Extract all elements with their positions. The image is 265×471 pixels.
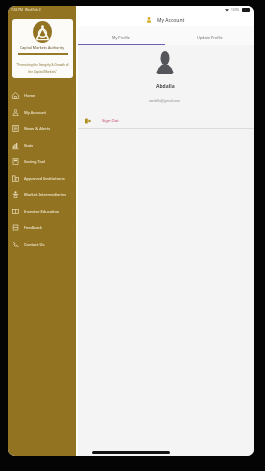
- staticText: Capital Markets Authority: [20, 45, 65, 50]
- button[interactable]: My Profile: [76, 35, 165, 45]
- button[interactable]: Investor Education: [8, 203, 76, 220]
- staticText: Wed Feb 2: [25, 8, 41, 12]
- button[interactable]: Market Intermediaries: [8, 186, 76, 203]
- staticText: Market Intermediaries: [24, 192, 67, 197]
- button[interactable]: Approved Institutions: [8, 170, 76, 187]
- button[interactable]: My Account: [8, 104, 76, 121]
- staticText: Feedback: [24, 225, 42, 230]
- button[interactable]: Contact Us: [8, 236, 76, 253]
- staticText: News & Alerts: [24, 126, 51, 131]
- button[interactable]: Update Profile: [165, 35, 254, 45]
- button[interactable]: Saving Tool: [8, 153, 76, 170]
- button[interactable]: News & Alerts: [8, 120, 76, 137]
- staticText: My Account: [157, 17, 185, 24]
- staticText: Sign Out: [102, 118, 119, 124]
- staticText: Saving Tool: [24, 159, 46, 164]
- button[interactable]: Stats: [8, 137, 76, 154]
- staticText: awdalla@gmail.com: [149, 98, 181, 102]
- button[interactable]: Home: [8, 87, 76, 104]
- staticText: Approved Institutions: [24, 176, 65, 181]
- staticText: Home: [24, 93, 36, 98]
- staticText: Update Profile: [197, 35, 223, 40]
- staticText: 7:52 PM: [11, 8, 23, 12]
- staticText: Stats: [24, 143, 34, 148]
- staticText: Abdalla: [156, 83, 175, 90]
- button[interactable]: Feedback: [8, 219, 76, 236]
- staticText: My Profile: [112, 35, 130, 40]
- staticText: 100%: [231, 8, 240, 12]
- button[interactable]: Sign Out: [76, 113, 254, 128]
- staticText: Contact Us: [24, 242, 45, 247]
- staticText: My Account: [24, 110, 46, 115]
- staticText: “Promoting the Integrity & Growth of the…: [16, 63, 69, 74]
- staticText: Investor Education: [24, 209, 60, 214]
